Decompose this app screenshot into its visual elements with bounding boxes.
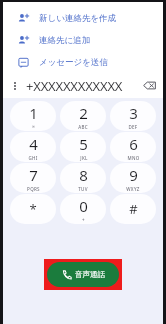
button[interactable]: Backspace — [143, 79, 156, 92]
button[interactable]: 3 — [110, 101, 156, 131]
staticText: 5 — [79, 134, 88, 154]
staticText: 2 — [79, 103, 88, 123]
staticText: GHI — [28, 155, 38, 161]
button[interactable]: 7 — [10, 163, 56, 193]
staticText: 新しい連絡先を作成 — [39, 13, 117, 24]
button[interactable]: 2 — [60, 101, 106, 131]
staticText: メッセージを送信 — [39, 57, 108, 68]
staticText: 9 — [129, 165, 138, 185]
staticText: ∞ — [31, 124, 36, 129]
staticText: 音声通話 — [75, 270, 105, 279]
staticText: 8 — [79, 165, 88, 185]
button[interactable]: 4 — [10, 132, 56, 162]
staticText: 6 — [129, 134, 138, 154]
button[interactable]: # — [110, 194, 156, 224]
staticText: +XXXXXXXXXXXX — [26, 77, 140, 95]
button[interactable]: 9 — [110, 163, 156, 193]
staticText: 連絡先に追加 — [39, 35, 91, 46]
staticText: + — [82, 217, 85, 223]
staticText: ABC — [78, 124, 88, 130]
staticText: WXYZ — [126, 186, 140, 192]
staticText: TUV — [78, 186, 88, 192]
staticText: 4 — [29, 134, 38, 154]
staticText: * — [29, 200, 37, 218]
button[interactable]: More options — [9, 80, 21, 92]
staticText: # — [129, 200, 138, 218]
staticText: PQRS — [27, 186, 40, 192]
button[interactable]: 8 — [60, 163, 106, 193]
staticText: 7 — [29, 165, 38, 185]
staticText: MNO — [127, 155, 140, 161]
button[interactable]: 新しい連絡先を作成 — [3, 7, 163, 29]
button[interactable]: * — [10, 194, 56, 224]
staticText: DEF — [128, 124, 138, 130]
button[interactable]: 1 — [10, 101, 56, 131]
staticText: JKL — [80, 155, 88, 161]
button[interactable]: 6 — [110, 132, 156, 162]
staticText: 0 — [79, 196, 88, 216]
button[interactable]: 連絡先に追加 — [3, 29, 163, 51]
button[interactable]: メッセージを送信 — [3, 51, 163, 73]
button[interactable]: 音声通話 — [47, 262, 119, 287]
button[interactable]: 0 — [60, 194, 106, 224]
staticText: 3 — [129, 103, 138, 123]
button[interactable]: 5 — [60, 132, 106, 162]
staticText: 1 — [29, 103, 38, 123]
